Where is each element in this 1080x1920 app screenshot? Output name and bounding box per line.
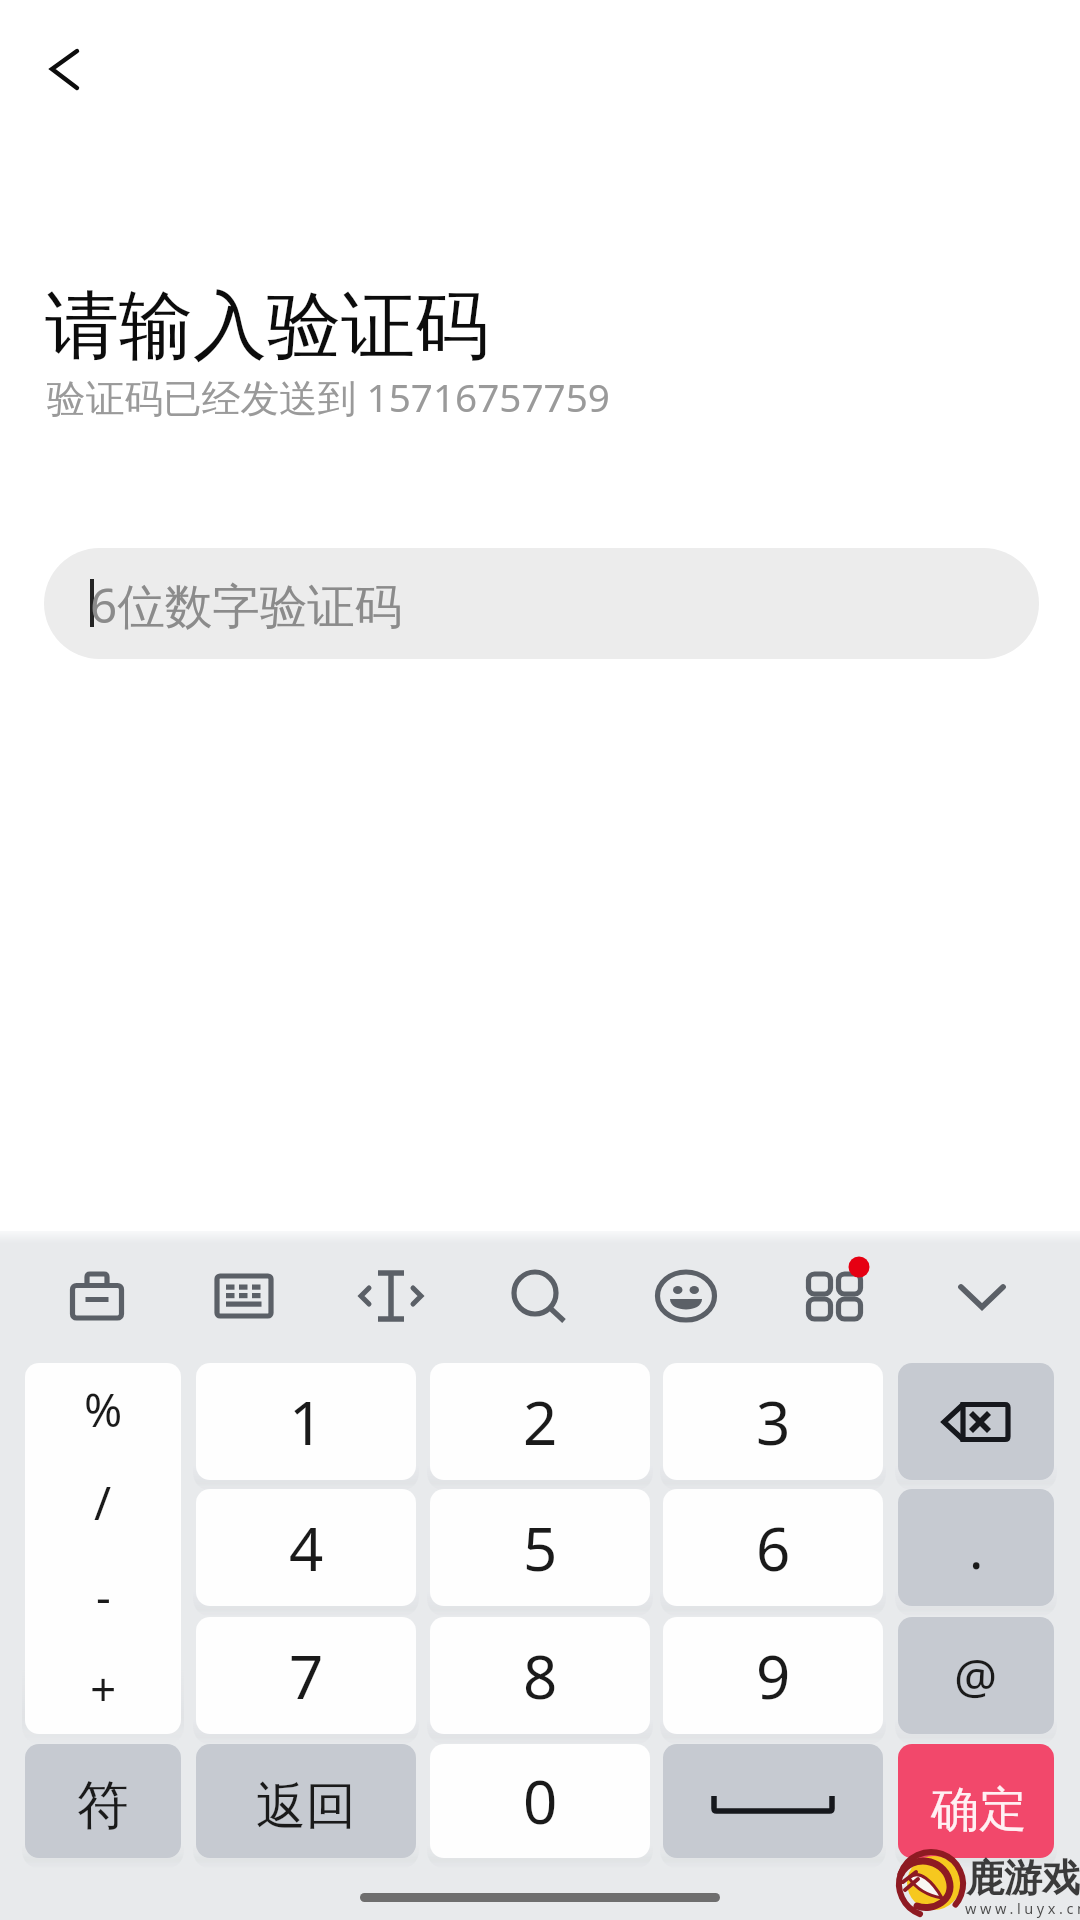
- button[interactable]: 0: [430, 1744, 650, 1858]
- staticText: 7: [289, 1635, 324, 1717]
- staticText: +: [90, 1657, 117, 1720]
- staticText: 9: [756, 1635, 791, 1717]
- staticText: /: [94, 1471, 112, 1534]
- staticText: 0: [523, 1760, 558, 1842]
- staticText: 鹿游戏: [966, 1854, 1080, 1902]
- staticText: 3: [756, 1381, 791, 1463]
- staticText: 2: [523, 1381, 558, 1463]
- staticText: 5: [523, 1507, 558, 1589]
- button[interactable]: Keyboard: [170, 1231, 317, 1361]
- button[interactable]: 返回: [196, 1744, 416, 1858]
- button[interactable]: 1: [196, 1363, 416, 1480]
- button[interactable]: Backspace: [898, 1363, 1054, 1480]
- staticText: .: [969, 1511, 984, 1585]
- button[interactable]: 8: [430, 1617, 650, 1734]
- staticText: www.luyx.cn: [965, 1898, 1080, 1918]
- button[interactable]: More apps: [760, 1231, 908, 1361]
- button[interactable]: 5: [430, 1489, 650, 1606]
- button[interactable]: Clipboard: [23, 1231, 170, 1361]
- staticText: 验证码已经发送到 15716757759: [47, 371, 610, 424]
- staticText: 6: [756, 1507, 791, 1589]
- button[interactable]: %: [25, 1363, 181, 1734]
- button[interactable]: @: [898, 1617, 1054, 1734]
- button[interactable]: 4: [196, 1489, 416, 1606]
- button[interactable]: Move cursor: [317, 1231, 464, 1361]
- staticText: %: [84, 1378, 123, 1441]
- staticText: 请输入验证码: [45, 280, 489, 373]
- staticText: 8: [523, 1635, 558, 1717]
- button[interactable]: Back: [20, 20, 110, 110]
- staticText: 确定: [931, 1780, 1027, 1840]
- button[interactable]: Hide keyboard: [908, 1231, 1056, 1361]
- button[interactable]: 7: [196, 1617, 416, 1734]
- staticText: 6位数字验证码: [90, 572, 403, 637]
- staticText: 符: [77, 1773, 129, 1839]
- staticText: @: [954, 1643, 998, 1708]
- button[interactable]: Emoji: [612, 1231, 760, 1361]
- staticText: 1: [289, 1381, 324, 1463]
- staticText: -: [96, 1564, 111, 1627]
- button[interactable]: 3: [663, 1363, 883, 1480]
- button[interactable]: Space: [663, 1744, 883, 1858]
- button[interactable]: 符: [25, 1744, 181, 1858]
- button[interactable]: 6: [663, 1489, 883, 1606]
- button[interactable]: 9: [663, 1617, 883, 1734]
- staticText: 返回: [256, 1775, 356, 1838]
- staticText: 4: [289, 1507, 324, 1589]
- button[interactable]: Search: [464, 1231, 612, 1361]
- button[interactable]: 2: [430, 1363, 650, 1480]
- button[interactable]: 确定: [898, 1744, 1054, 1858]
- button[interactable]: 6位数字验证码: [44, 548, 1039, 659]
- button[interactable]: .: [898, 1489, 1054, 1606]
